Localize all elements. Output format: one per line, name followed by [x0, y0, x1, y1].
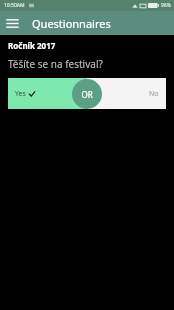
button[interactable]: Open navigation menu: [0, 11, 24, 35]
staticText: Ročník 2017: [8, 40, 56, 51]
button[interactable]: Yes: [8, 78, 87, 109]
staticText: OR: [81, 89, 93, 100]
button[interactable]: OR: [72, 79, 102, 109]
button[interactable]: No: [87, 78, 166, 109]
staticText: 10:50AM: [4, 2, 25, 9]
staticText: No: [149, 89, 159, 99]
staticText: Questionnaires: [32, 16, 111, 31]
staticText: Yes: [15, 89, 26, 99]
staticText: Těšíte se na festival?: [8, 57, 103, 71]
staticText: 96%: [161, 2, 171, 9]
